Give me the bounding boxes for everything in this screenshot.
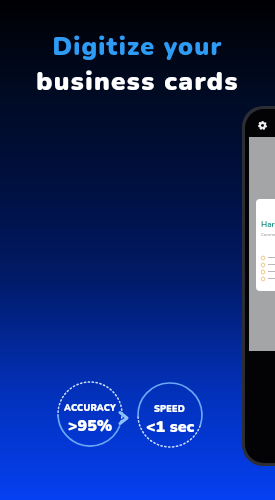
staticText: <1 sec [146, 416, 195, 438]
button[interactable]: SPEED [136, 381, 204, 449]
staticText: Harrison [261, 219, 275, 230]
staticText: ACCURACY [64, 402, 117, 414]
staticText: SPEED [154, 403, 186, 415]
staticText: >95% [68, 415, 113, 437]
button[interactable]: Settings [258, 121, 267, 130]
staticText: Commercial [261, 231, 275, 237]
staticText: Digitize your [52, 30, 223, 64]
staticText: business cards [36, 64, 239, 99]
button[interactable]: ACCURACY [56, 380, 124, 448]
